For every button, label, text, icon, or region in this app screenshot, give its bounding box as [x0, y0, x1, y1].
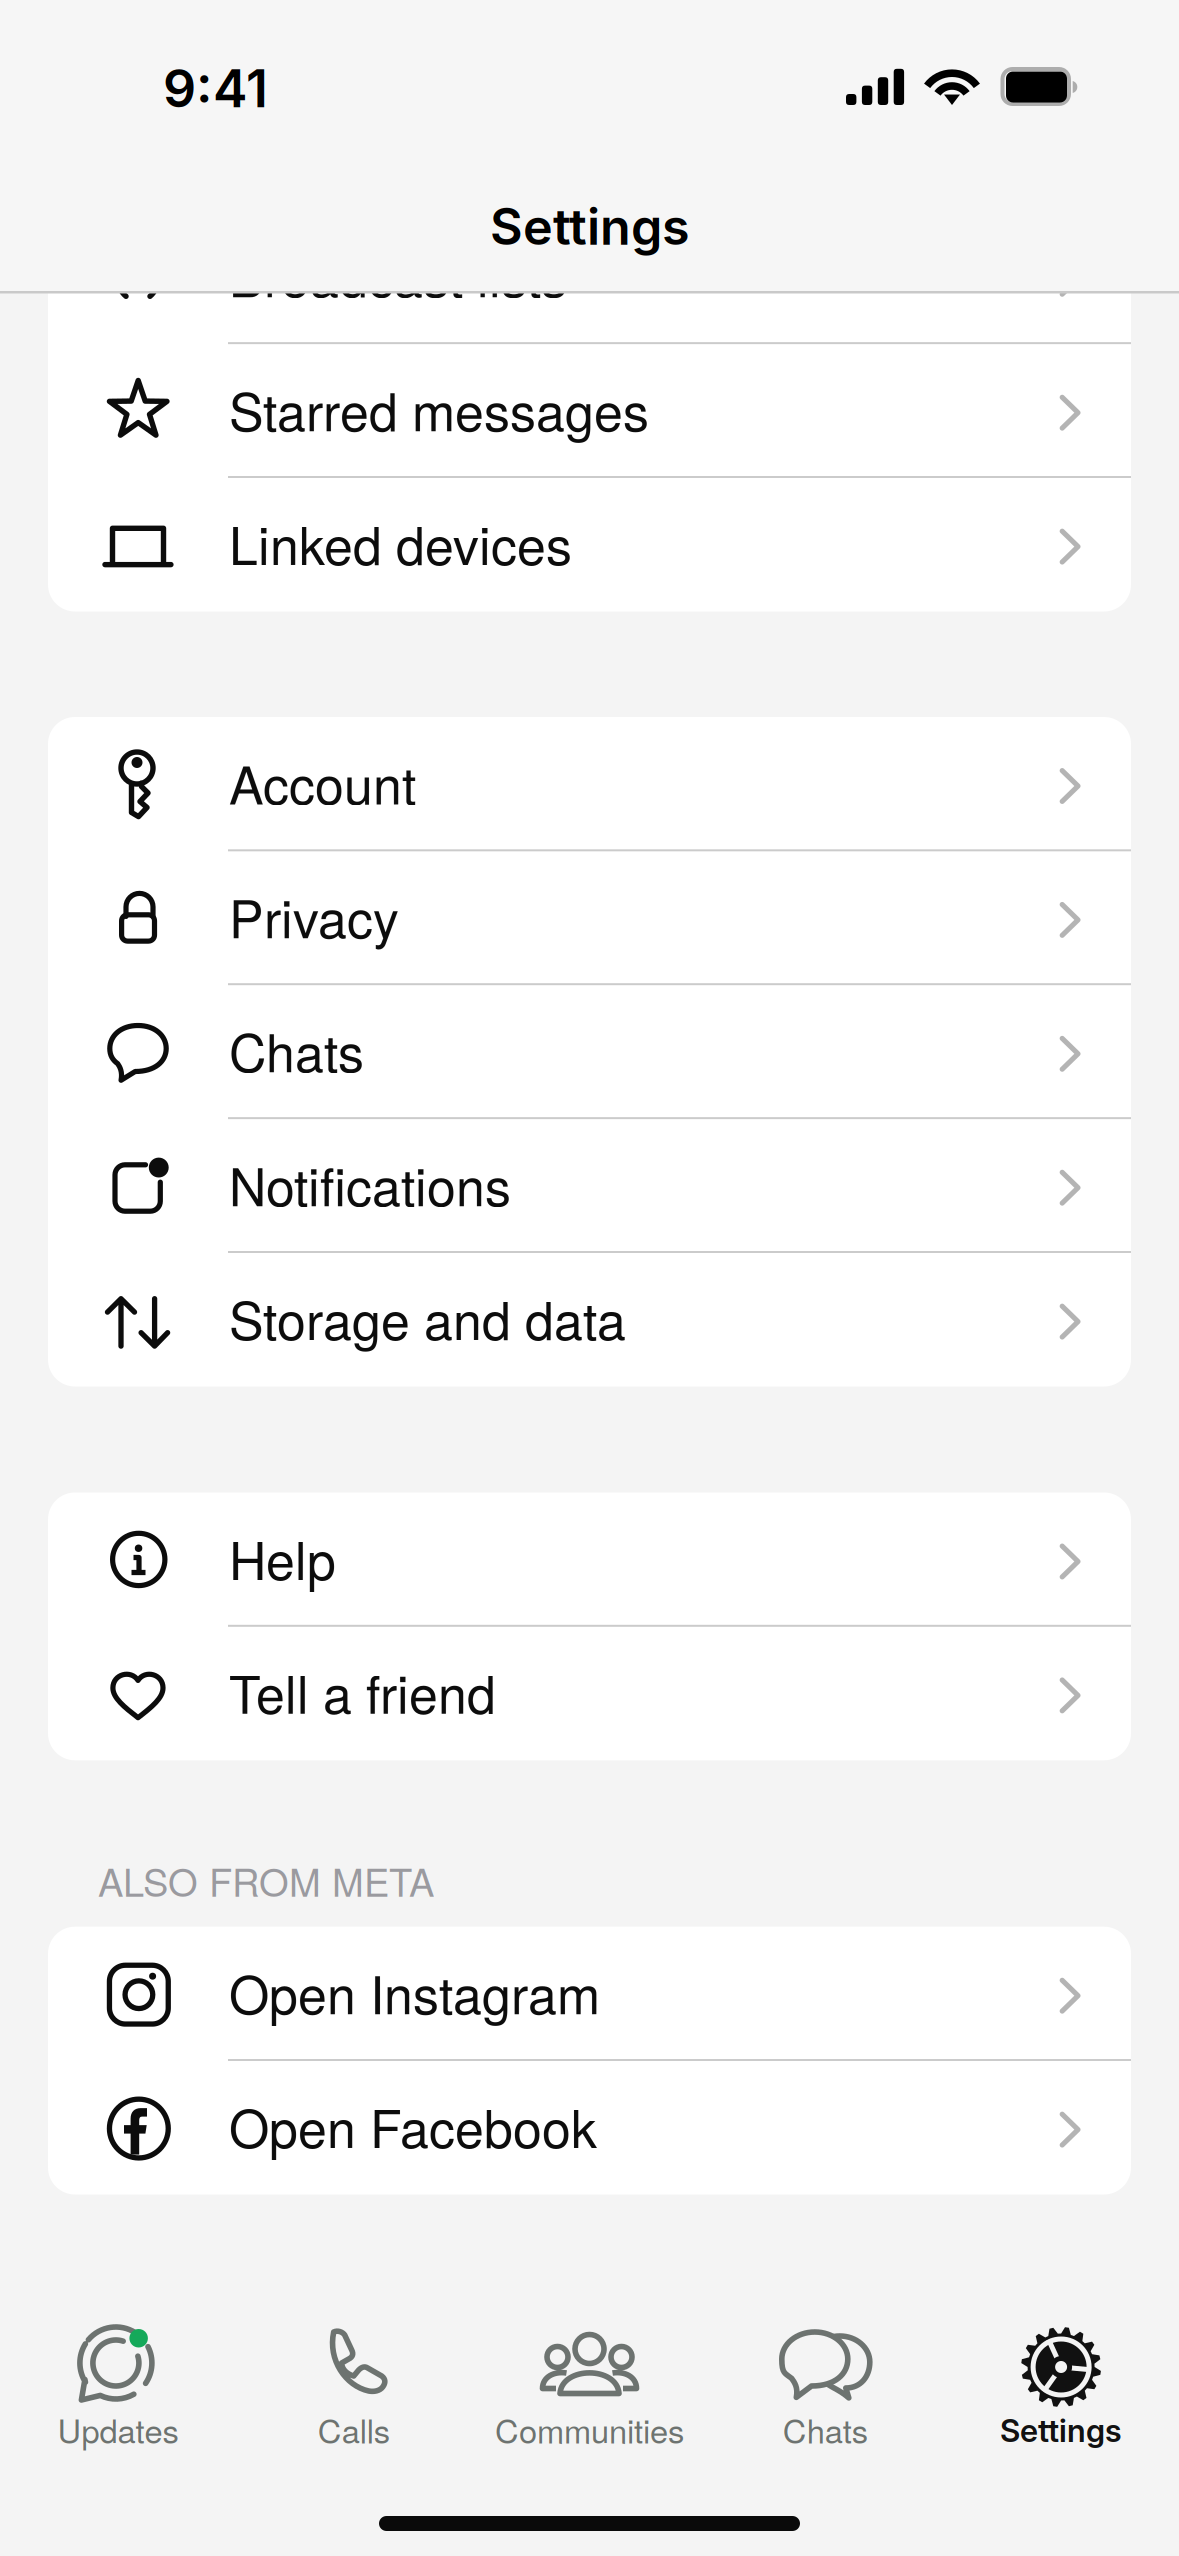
staticText: Account	[229, 745, 416, 819]
button[interactable]: Chats	[48, 985, 1131, 1119]
staticText: Open Facebook	[229, 2089, 597, 2163]
button[interactable]: Tell a friend	[48, 1626, 1131, 1760]
button[interactable]: Storage and data	[48, 1253, 1131, 1386]
staticText: 9:41	[163, 57, 268, 120]
button[interactable]: Open Facebook	[48, 2061, 1131, 2194]
button[interactable]: Calls	[236, 2282, 472, 2457]
button[interactable]: Open Instagram	[48, 1927, 1131, 2061]
staticText: Chats	[783, 2406, 868, 2453]
staticText: Starred messages	[229, 372, 649, 446]
button[interactable]: Chats	[707, 2282, 943, 2457]
staticText: Settings	[490, 196, 690, 257]
staticText: Tell a friend	[229, 1654, 496, 1729]
button[interactable]: Updates	[0, 2282, 236, 2457]
staticText: Storage and data	[229, 1281, 626, 1355]
button[interactable]: Notifications	[48, 1119, 1131, 1253]
button[interactable]: Help	[48, 1492, 1131, 1626]
staticText: Updates	[57, 2406, 178, 2453]
staticText: Notifications	[229, 1147, 511, 1221]
button[interactable]: Account	[48, 717, 1131, 851]
button[interactable]: Broadcast lists	[48, 210, 1131, 344]
staticText: Broadcast lists	[229, 238, 567, 312]
button[interactable]: Communities	[472, 2282, 707, 2457]
staticText: Chats	[229, 1013, 364, 1087]
staticText: Help	[229, 1520, 336, 1595]
staticText: Open Instagram	[229, 1955, 600, 2029]
button[interactable]: Settings	[943, 2282, 1179, 2457]
staticText: Settings	[1000, 2411, 1122, 2450]
button[interactable]: Starred messages	[48, 344, 1131, 478]
button[interactable]: Privacy	[48, 851, 1131, 985]
staticText: Communities	[495, 2406, 684, 2453]
button[interactable]: Linked devices	[48, 478, 1131, 611]
staticText: ALSO FROM META	[98, 1853, 434, 1908]
staticText: Linked devices	[229, 506, 572, 580]
staticText: Privacy	[229, 879, 399, 953]
staticText: Calls	[318, 2406, 390, 2453]
